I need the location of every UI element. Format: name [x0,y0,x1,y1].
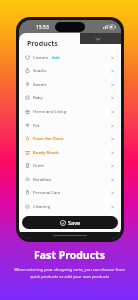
staticText: Ready Meals [33,150,59,156]
button[interactable]: Drink [19,159,121,172]
button[interactable]: Ready Meals [19,146,121,159]
staticText: Sweets [33,82,47,88]
staticText: Products [27,39,58,49]
button[interactable]: Collapse [80,33,121,44]
staticText: Custom [33,55,49,61]
button[interactable]: Baby [19,91,121,104]
button[interactable]: Home and Living [19,105,121,118]
button[interactable]: Custom [19,51,121,64]
staticText: Breakfast [33,177,52,183]
button[interactable]: Snacks [19,64,121,77]
staticText: Add [52,55,60,60]
staticText: Snacks [33,68,47,74]
button[interactable]: Personal Care [19,186,121,199]
button[interactable]: Cleaning [19,200,121,213]
staticText: When entering your shopping carts, you c… [14,267,125,279]
button[interactable]: Sweets [19,78,121,91]
button[interactable]: Save [22,216,118,229]
staticText: Save [68,219,81,226]
staticText: Fast Products [34,248,105,262]
staticText: Personal Care [33,190,61,196]
staticText: From the Oven [33,136,64,142]
staticText: Cleaning [33,204,51,210]
button[interactable]: Pet [19,119,121,132]
button[interactable]: Breakfast [19,173,121,186]
staticText: Pet [33,123,40,129]
staticText: Home and Living [33,109,67,115]
staticText: 15:53 [36,24,49,31]
staticText: Drink [33,163,44,169]
button[interactable]: From the Oven [19,132,121,145]
staticText: Baby [33,95,43,101]
